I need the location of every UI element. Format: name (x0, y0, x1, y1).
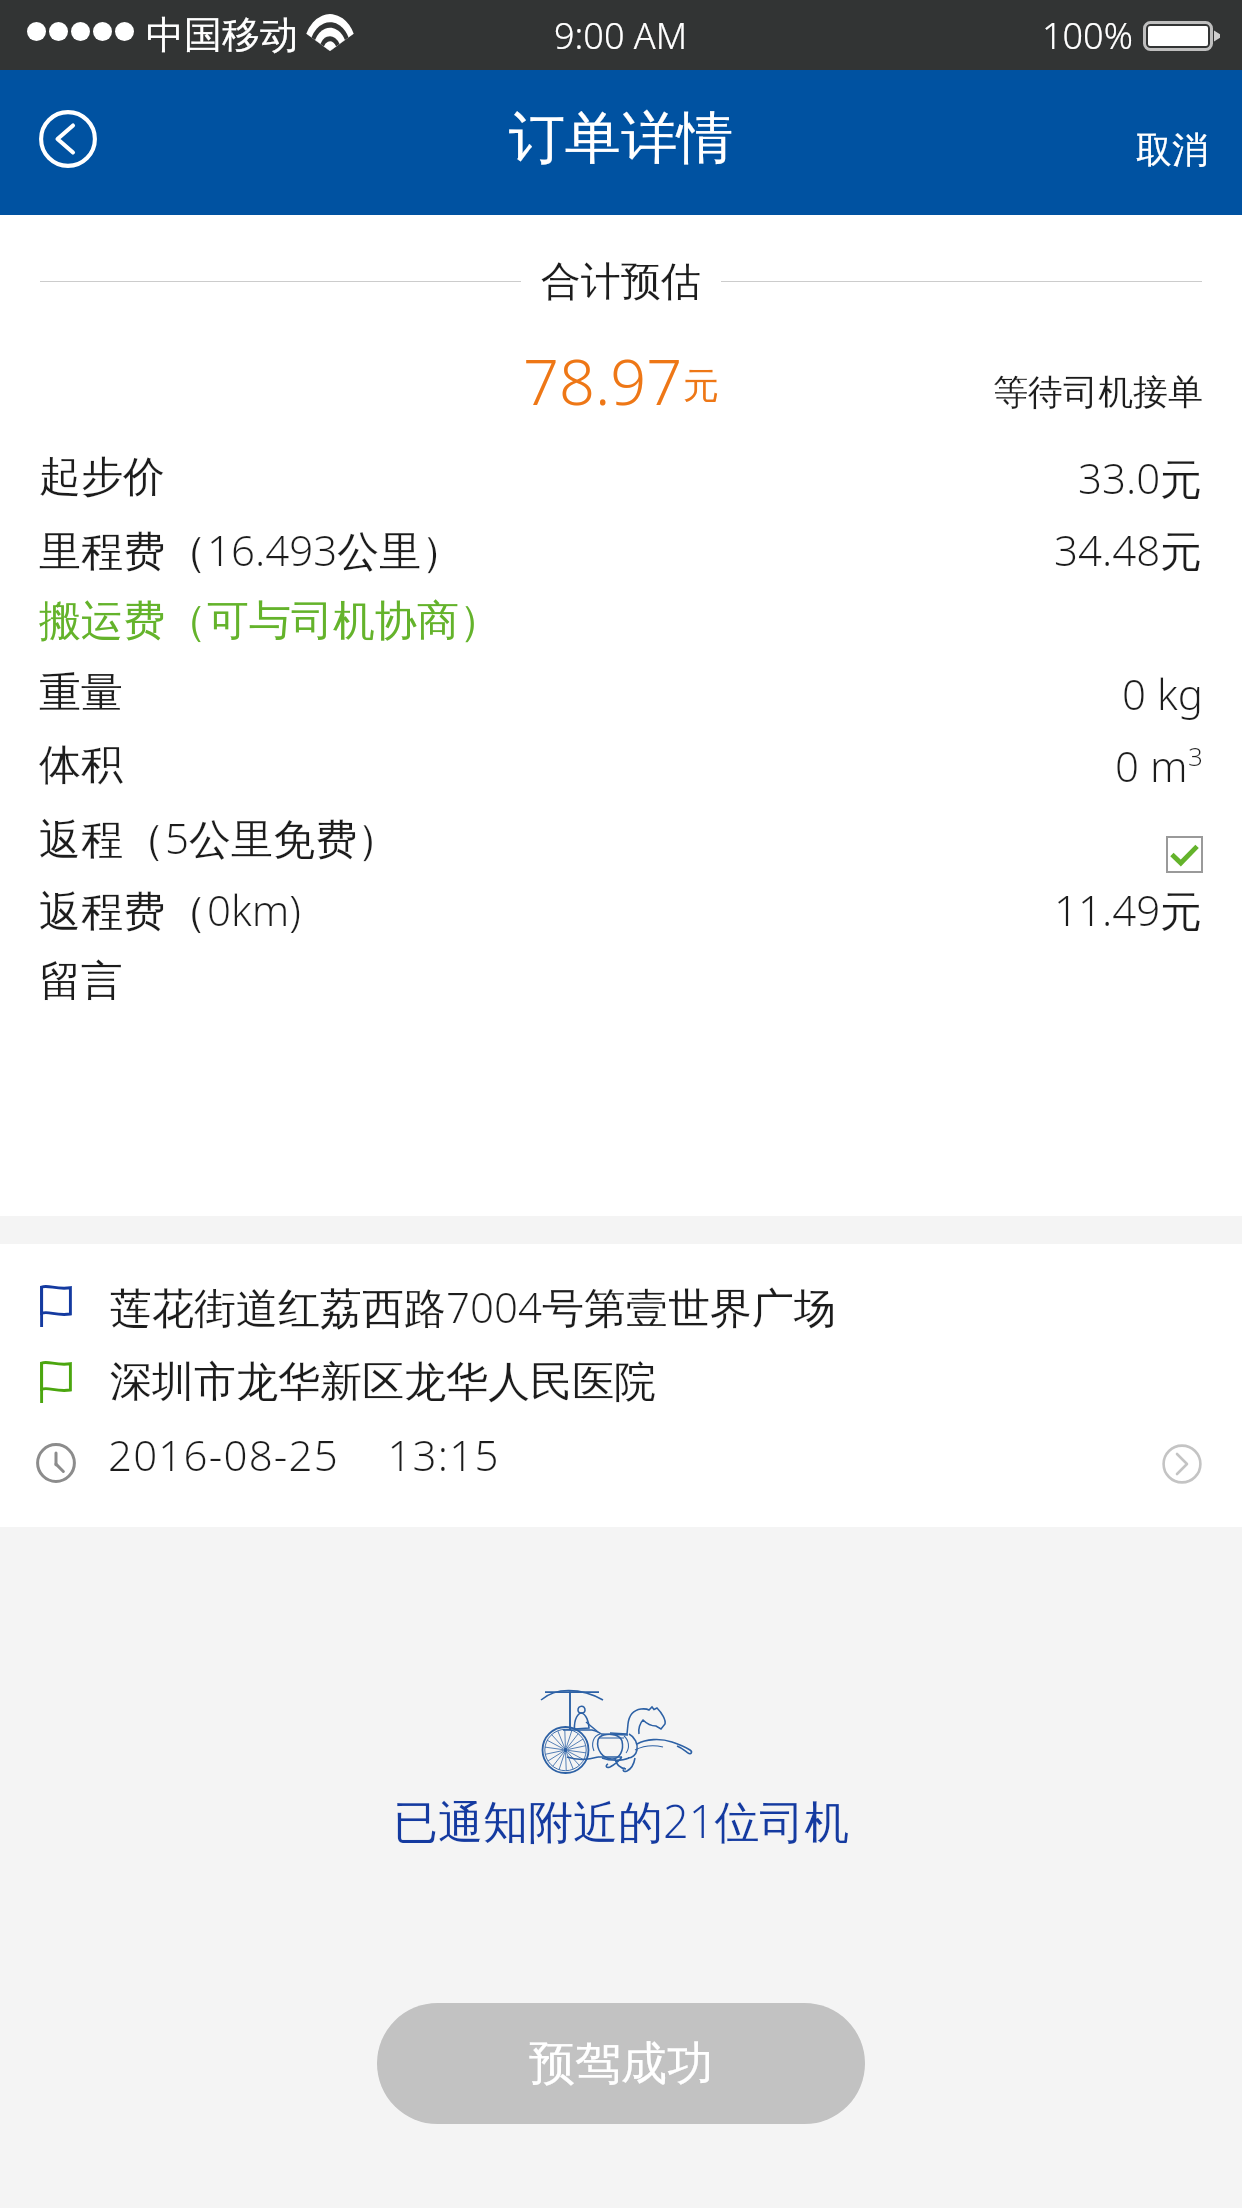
staticText: 体积 (39, 739, 123, 792)
button[interactable]: 返程（5公里免费） (39, 801, 1203, 873)
staticText: 订单详情 (509, 103, 733, 174)
staticText: 3 (1188, 738, 1203, 773)
staticText: 返程（5公里免费） (39, 809, 399, 866)
staticText: 100% (1042, 11, 1133, 60)
staticText: 深圳市龙华新区龙华人民医院 (110, 1356, 656, 1409)
staticText: 0 m (1115, 737, 1188, 794)
staticText: 已通知附近的21位司机 (393, 1790, 850, 1851)
staticText: 11.49元 (1054, 881, 1203, 938)
staticText: 元 (683, 363, 719, 408)
staticText: 合计预估 (541, 256, 701, 306)
staticText: 里程费（16.493公里） (39, 521, 464, 578)
staticText: 34.48元 (1054, 521, 1203, 578)
staticText: 返程费（0km) (39, 881, 301, 938)
staticText: 起步价 (39, 451, 165, 504)
staticText: 重量 (39, 667, 123, 720)
button[interactable]: 2016-08-25 13:15 (36, 1420, 1202, 1496)
staticText: 78.97 (523, 338, 683, 412)
staticText: 取消 (1136, 127, 1208, 172)
staticText: 等待司机接单 (993, 370, 1203, 414)
button[interactable]: Back (18, 89, 118, 189)
button[interactable]: 取消 (1114, 113, 1242, 186)
staticText: 留言 (39, 955, 123, 1008)
staticText: 2016-08-25 13:15 (108, 1426, 500, 1483)
staticText: 9:00 AM (554, 11, 688, 60)
button[interactable]: 预驾成功 (377, 2003, 865, 2124)
staticText: 33.0元 (1078, 449, 1203, 506)
staticText: 搬运费（可与司机协商） (39, 595, 501, 648)
staticText: 中国移动 (146, 11, 298, 59)
staticText: 0 kg (1122, 665, 1203, 722)
button[interactable]: Details (1162, 1444, 1202, 1484)
staticText: 预驾成功 (529, 2035, 713, 2093)
staticText: 莲花街道红荔西路7004号第壹世界广场 (110, 1278, 836, 1335)
